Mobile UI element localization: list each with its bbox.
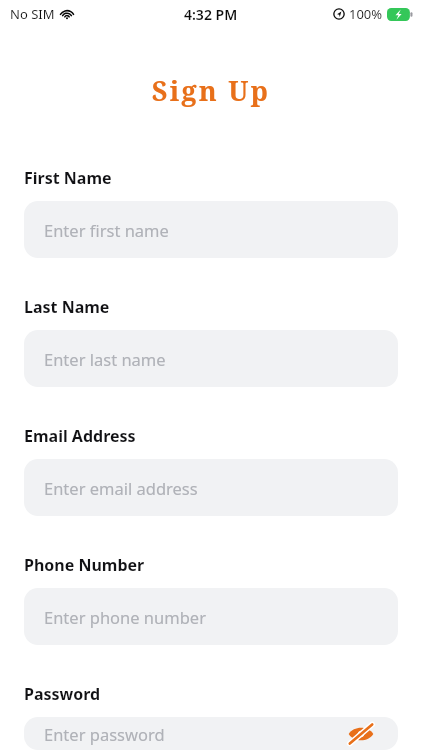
button[interactable]: Enter last name — [24, 330, 398, 387]
staticText: Sign Up — [0, 72, 422, 109]
staticText: Last Name — [24, 296, 110, 318]
staticText: 4:32 PM — [184, 5, 238, 24]
staticText: 100% — [349, 5, 383, 23]
staticText: First Name — [24, 167, 112, 189]
staticText: Enter first name — [44, 219, 169, 241]
staticText: No SIM — [10, 5, 55, 23]
staticText: Email Address — [24, 425, 136, 447]
button[interactable]: Enter first name — [24, 201, 398, 258]
staticText: Enter phone number — [44, 606, 206, 628]
button[interactable]: Enter phone number — [24, 588, 398, 645]
staticText: Phone Number — [24, 554, 145, 576]
staticText: Enter email address — [44, 477, 198, 499]
staticText: Enter last name — [44, 348, 166, 370]
button[interactable]: Enter password — [24, 717, 398, 750]
staticText: Password — [24, 683, 101, 705]
button[interactable]: Enter email address — [24, 459, 398, 516]
button[interactable]: Show password — [344, 717, 378, 750]
staticText: Enter password — [44, 723, 165, 745]
